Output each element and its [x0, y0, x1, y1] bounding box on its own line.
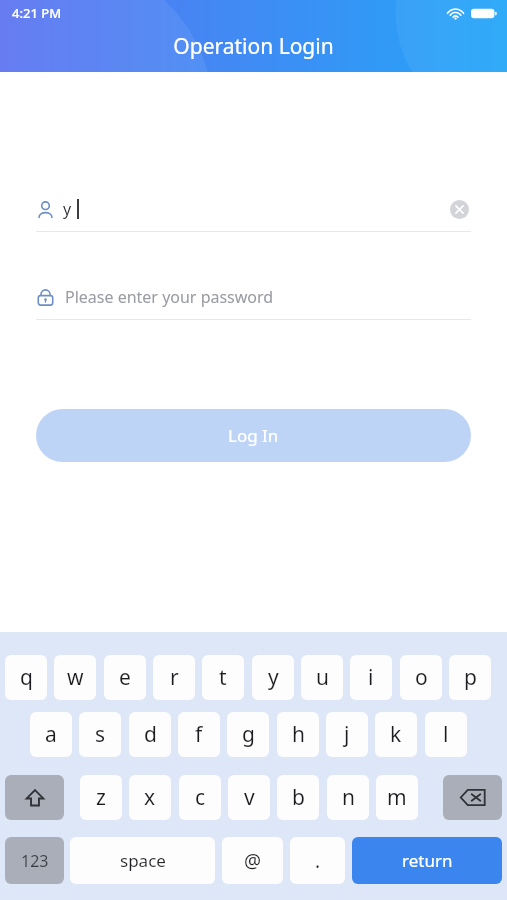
staticText: r — [170, 663, 179, 692]
staticText: a — [45, 720, 57, 749]
button[interactable]: o — [400, 655, 442, 700]
staticText: e — [119, 663, 131, 692]
staticText: p — [464, 663, 477, 692]
button[interactable]: Shift — [5, 775, 64, 820]
staticText: space — [120, 849, 166, 872]
button[interactable]: p — [449, 655, 491, 700]
staticText: y — [63, 198, 72, 220]
button[interactable]: r — [153, 655, 195, 700]
button[interactable]: l — [425, 712, 467, 757]
staticText: 4:21 PM — [12, 4, 62, 22]
staticText: l — [443, 720, 449, 749]
button[interactable]: a — [30, 712, 72, 757]
button[interactable]: h — [277, 712, 319, 757]
staticText: 123 — [21, 850, 49, 872]
button[interactable]: q — [5, 655, 47, 700]
button[interactable]: m — [376, 775, 418, 820]
staticText: d — [144, 720, 157, 749]
button[interactable]: f — [178, 712, 220, 757]
staticText: f — [195, 720, 203, 749]
staticText: c — [195, 783, 206, 812]
button[interactable]: u — [301, 655, 343, 700]
staticText: m — [387, 783, 407, 812]
button[interactable]: y — [36, 187, 471, 231]
staticText: w — [67, 663, 84, 692]
staticText: q — [20, 663, 33, 692]
button[interactable]: Backspace — [443, 775, 502, 820]
staticText: t — [219, 663, 227, 692]
staticText: . — [315, 848, 321, 874]
button[interactable]: z — [80, 775, 122, 820]
button[interactable]: s — [79, 712, 121, 757]
button[interactable]: 123 — [5, 837, 64, 884]
button[interactable]: i — [350, 655, 392, 700]
staticText: Operation Login — [173, 32, 334, 61]
button[interactable]: . — [290, 837, 345, 884]
button[interactable]: d — [129, 712, 171, 757]
staticText: n — [342, 783, 355, 812]
button[interactable]: Log In — [36, 409, 471, 462]
staticText: Please enter your password — [65, 286, 274, 308]
button[interactable]: e — [104, 655, 146, 700]
button[interactable]: w — [54, 655, 96, 700]
button[interactable]: Clear text — [447, 197, 471, 221]
button[interactable]: t — [202, 655, 244, 700]
staticText: s — [95, 720, 106, 749]
button[interactable]: b — [277, 775, 319, 820]
staticText: i — [368, 663, 374, 692]
staticText: @ — [244, 848, 262, 874]
staticText: z — [96, 783, 106, 812]
button[interactable]: g — [227, 712, 269, 757]
staticText: y — [268, 663, 279, 692]
staticText: u — [316, 663, 329, 692]
staticText: g — [242, 720, 255, 749]
button[interactable]: x — [129, 775, 171, 820]
staticText: Log In — [228, 424, 279, 447]
button[interactable]: j — [326, 712, 368, 757]
button[interactable]: c — [179, 775, 221, 820]
staticText: v — [244, 783, 255, 812]
staticText: return — [402, 849, 453, 872]
button[interactable]: return — [352, 837, 502, 884]
staticText: j — [344, 720, 350, 749]
staticText: h — [292, 720, 305, 749]
button[interactable]: @ — [222, 837, 283, 884]
staticText: k — [390, 720, 402, 749]
staticText: x — [144, 783, 156, 812]
button[interactable]: y — [252, 655, 294, 700]
button[interactable]: space — [70, 837, 215, 884]
button[interactable]: n — [327, 775, 369, 820]
button[interactable]: v — [228, 775, 270, 820]
button[interactable]: Please enter your password — [36, 275, 471, 319]
staticText: o — [415, 663, 428, 692]
staticText: b — [292, 783, 305, 812]
button[interactable]: k — [375, 712, 417, 757]
